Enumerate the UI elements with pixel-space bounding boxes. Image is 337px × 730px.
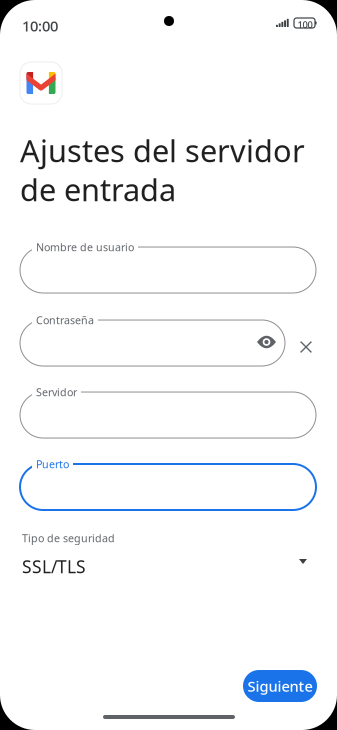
staticText: Siguiente [247,676,312,696]
button[interactable] [20,392,316,438]
staticText: Tipo de seguridad [22,531,115,545]
button[interactable] [20,320,285,366]
button[interactable]: Siguiente [243,670,317,702]
staticText: Ajustes del servidor [20,130,305,171]
staticText: Contraseña [36,313,94,327]
button[interactable]: Borrar [300,341,312,353]
button[interactable] [20,464,316,510]
button[interactable]: Tipo de seguridad [20,530,316,578]
staticText: 10:00 [22,16,58,35]
button[interactable]: Seleccionar tipo de seguridad [299,559,307,564]
button[interactable]: Mostrar contraseña [257,336,276,348]
staticText: 100 [297,18,312,31]
staticText: SSL/TLS [22,555,86,578]
staticText: Servidor [36,385,77,399]
staticText: Nombre de usuario [36,240,134,254]
staticText: Puerto [36,457,69,471]
button[interactable] [20,247,316,293]
staticText: de entrada [20,169,176,210]
